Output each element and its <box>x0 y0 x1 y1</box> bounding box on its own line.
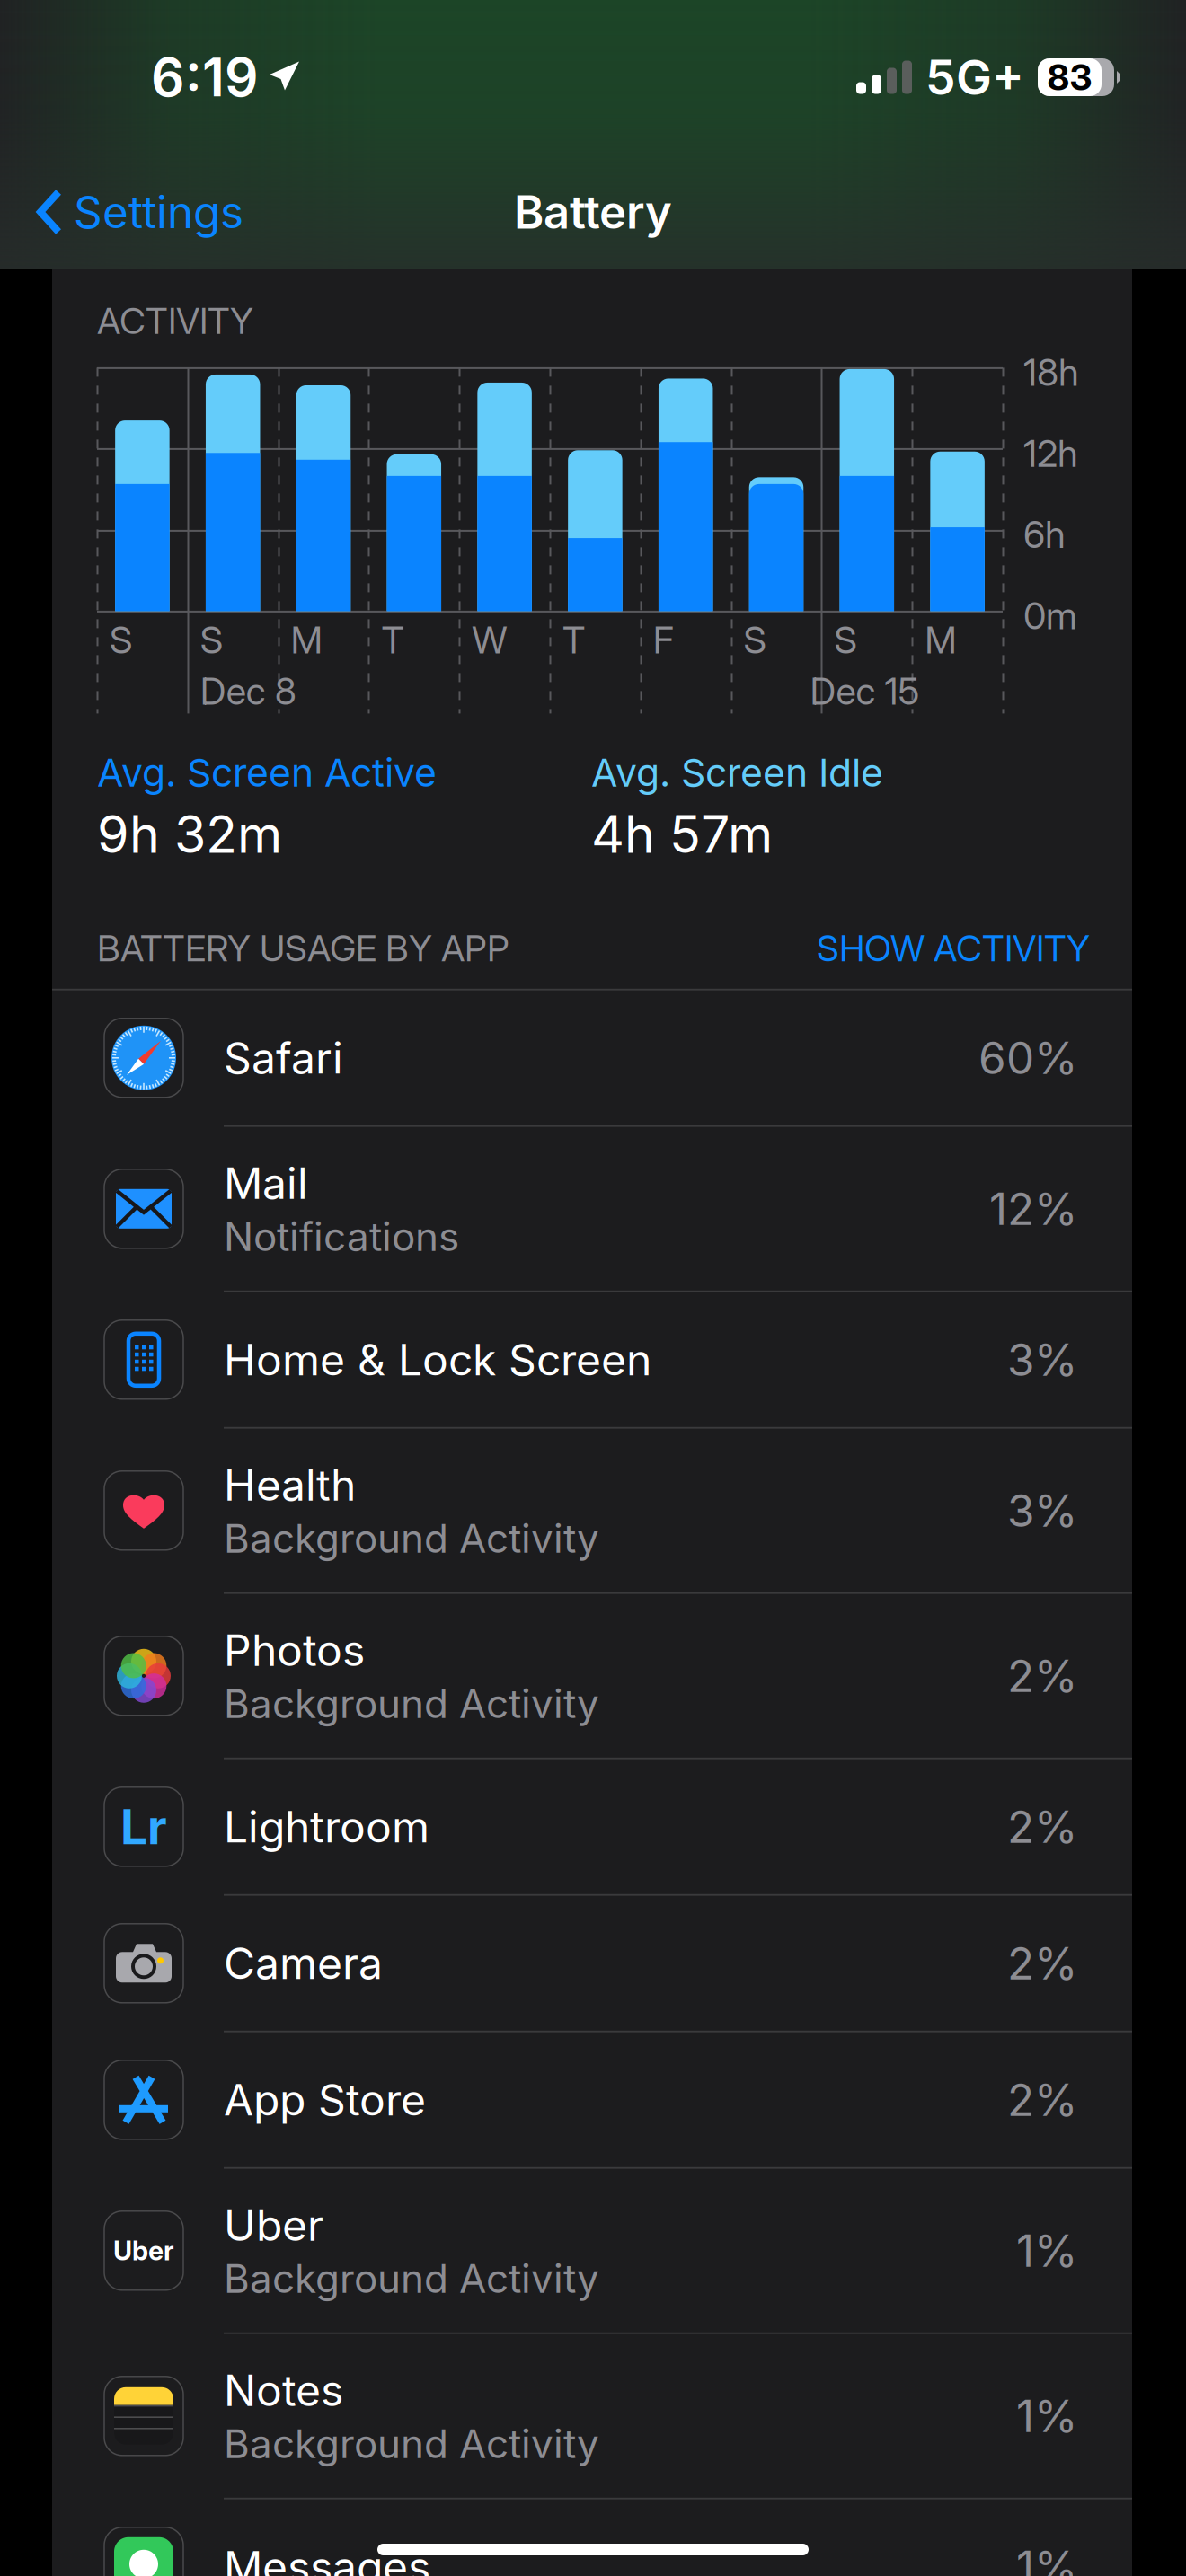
staticText: F <box>653 617 674 662</box>
staticText: 3% <box>1007 1484 1077 1537</box>
staticText: S <box>744 617 766 662</box>
staticText: M <box>925 617 957 662</box>
staticText: Messages <box>224 2541 430 2576</box>
staticText: ACTIVITY <box>97 299 253 343</box>
button[interactable]: Messages <box>52 2499 1132 2576</box>
staticText: 6:19 <box>151 45 259 109</box>
staticText: 12h <box>1023 431 1078 476</box>
staticText: BATTERY USAGE BY APP <box>97 926 509 970</box>
staticText: 4h 57m <box>591 803 773 865</box>
staticText: Notes <box>224 2364 343 2416</box>
button[interactable]: App Store <box>52 2032 1132 2169</box>
staticText: 2% <box>1007 1936 1077 1990</box>
button[interactable]: SHOW ACTIVITY <box>817 926 1090 970</box>
staticText: M <box>291 617 323 662</box>
button[interactable]: Settings <box>0 154 265 269</box>
staticText: 2% <box>1007 2073 1077 2127</box>
staticText: 1% <box>1016 2540 1077 2576</box>
button[interactable]: Uber <box>52 2169 1132 2334</box>
staticText: T <box>562 617 585 662</box>
staticText: T <box>381 617 404 662</box>
button[interactable]: Camera <box>52 1896 1132 2032</box>
staticText: S <box>834 617 857 662</box>
staticText: 2% <box>1007 1800 1077 1853</box>
staticText: Safari <box>224 1032 343 1084</box>
staticText: 18h <box>1023 350 1079 395</box>
staticText: Background Activity <box>224 1680 599 1728</box>
staticText: 1% <box>1016 2224 1077 2277</box>
button[interactable]: Mail <box>52 1127 1132 1292</box>
button[interactable]: Lr <box>52 1759 1132 1896</box>
button[interactable]: Home & Lock Screen <box>52 1292 1132 1429</box>
staticText: 0m <box>1023 593 1077 638</box>
staticText: Uber <box>113 2235 174 2267</box>
staticText: Home & Lock Screen <box>224 1334 651 1386</box>
staticText: 3% <box>1007 1333 1077 1386</box>
button[interactable]: Safari <box>52 991 1132 1127</box>
staticText: Dec 15 <box>810 669 920 714</box>
staticText: Lightroom <box>224 1801 429 1853</box>
staticText: App Store <box>224 2074 426 2126</box>
staticText: Lr <box>120 1798 167 1856</box>
staticText: Uber <box>224 2199 323 2251</box>
staticText: Health <box>224 1459 356 1511</box>
staticText: Mail <box>224 1157 308 1209</box>
staticText: 6h <box>1023 512 1066 557</box>
staticText: Notifications <box>224 1213 459 1261</box>
staticText: 83 <box>1047 56 1092 99</box>
staticText: Background Activity <box>224 2255 599 2302</box>
staticText: 5G+ <box>925 48 1024 106</box>
staticText: Background Activity <box>224 2420 599 2468</box>
staticText: S <box>200 617 223 662</box>
staticText: Avg. Screen Active <box>97 749 437 796</box>
staticText: 60% <box>978 1031 1077 1085</box>
staticText: 9h 32m <box>97 803 282 865</box>
button[interactable]: Health <box>52 1429 1132 1594</box>
staticText: SHOW ACTIVITY <box>817 926 1090 970</box>
staticText: 2% <box>1007 1649 1077 1703</box>
button[interactable]: Notes <box>52 2334 1132 2499</box>
staticText: Photos <box>224 1624 365 1676</box>
staticText: W <box>472 617 507 662</box>
staticText: 12% <box>989 1182 1077 1236</box>
staticText: Avg. Screen Idle <box>591 749 883 796</box>
staticText: Background Activity <box>224 1515 599 1562</box>
staticText: Dec 8 <box>200 669 296 714</box>
staticText: S <box>110 617 132 662</box>
staticText: 1% <box>1016 2389 1077 2443</box>
staticText: Battery <box>514 184 672 239</box>
staticText: Settings <box>74 185 243 239</box>
staticText: Camera <box>224 1937 383 1989</box>
button[interactable]: Photos <box>52 1594 1132 1759</box>
